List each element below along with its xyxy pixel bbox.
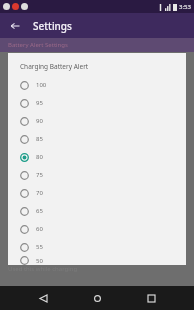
staticText: 75: [36, 171, 43, 179]
staticText: 95: [36, 99, 43, 107]
button[interactable]: 90: [8, 112, 186, 130]
button[interactable]: 95: [8, 94, 186, 112]
button[interactable]: 55: [8, 238, 186, 256]
staticText: Charging Battery Alert: [20, 62, 89, 71]
staticText: 85: [36, 135, 43, 143]
button[interactable]: 100: [8, 76, 186, 94]
button[interactable]: 85: [8, 130, 186, 148]
button[interactable]: 60: [8, 220, 186, 238]
staticText: 3:53: [179, 3, 191, 11]
button[interactable]: 65: [8, 202, 186, 220]
staticText: 80: [36, 153, 43, 161]
button[interactable]: Recents: [140, 287, 162, 309]
staticText: 50: [36, 257, 43, 265]
staticText: Settings: [33, 19, 72, 33]
button[interactable]: 80: [8, 148, 186, 166]
staticText: 65: [36, 207, 43, 215]
button[interactable]: Back: [6, 17, 24, 35]
button[interactable]: Home: [86, 287, 108, 309]
button[interactable]: 50: [8, 256, 186, 265]
staticText: 70: [36, 189, 43, 197]
staticText: Battery Alert Settings: [8, 41, 68, 49]
staticText: 90: [36, 117, 43, 125]
button[interactable]: Back: [32, 287, 54, 309]
button[interactable]: 70: [8, 184, 186, 202]
staticText: 60: [36, 225, 43, 233]
staticText: 100: [36, 81, 47, 89]
button[interactable]: 75: [8, 166, 186, 184]
staticText: 55: [36, 243, 43, 251]
